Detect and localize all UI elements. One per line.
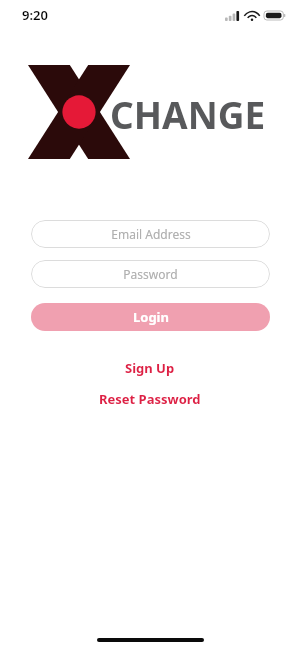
staticText: CHANGE xyxy=(110,89,266,139)
button[interactable]: Reset Password xyxy=(89,388,211,410)
button[interactable]: Email Address xyxy=(31,220,270,248)
button[interactable]: Password xyxy=(31,260,270,288)
button[interactable]: Sign Up xyxy=(115,357,185,379)
staticText: Login xyxy=(133,308,169,326)
staticText: Password xyxy=(123,266,178,282)
staticText: Sign Up xyxy=(125,359,175,377)
button[interactable]: Login xyxy=(31,303,270,331)
staticText: 9:20 xyxy=(22,6,48,24)
staticText: Reset Password xyxy=(99,390,201,408)
staticText: Email Address xyxy=(111,226,191,242)
